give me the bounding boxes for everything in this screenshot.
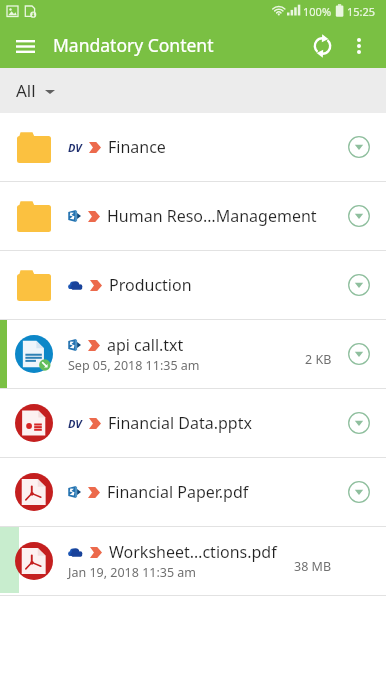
staticText: Financial Data.pptx: [108, 412, 252, 434]
button[interactable]: Show options for Financial Data.pptx: [340, 404, 378, 442]
button[interactable]: Show options for api call.txt: [340, 335, 378, 373]
staticText: 2 KB: [305, 351, 332, 368]
button[interactable]: api call.txt: [0, 320, 386, 388]
staticText: 38 MB: [294, 558, 332, 575]
staticText: Mandatory Content: [53, 33, 214, 57]
staticText: All: [16, 79, 36, 102]
button[interactable]: DV: [0, 389, 386, 457]
staticText: Financial Paper.pdf: [107, 481, 249, 503]
staticText: Finance: [108, 136, 166, 158]
button[interactable]: Financial Paper.pdf: [0, 458, 386, 526]
staticText: api call.txt: [107, 334, 184, 356]
button[interactable]: All: [0, 68, 386, 113]
button[interactable]: Worksheet…ctions.pdf: [0, 527, 386, 595]
button[interactable]: Show options for Finance: [340, 128, 378, 166]
button[interactable]: Show options for Financial Paper.pdf: [340, 473, 378, 511]
staticText: DV: [68, 140, 82, 155]
staticText: Worksheet…ctions.pdf: [109, 541, 277, 563]
staticText: Jan 19, 2018 11:35 am: [68, 564, 197, 581]
button[interactable]: Open navigation drawer: [5, 26, 45, 66]
staticText: DV: [68, 416, 82, 431]
button[interactable]: Show options for Production: [340, 266, 378, 304]
staticText: 15:25: [347, 4, 376, 19]
button[interactable]: Human Reso…Management: [0, 182, 386, 250]
button[interactable]: Production: [0, 251, 386, 319]
button[interactable]: DV: [0, 113, 386, 181]
staticText: Sep 05, 2018 11:35 am: [68, 357, 200, 374]
button[interactable]: Sync: [302, 25, 343, 66]
button[interactable]: Show options for Human Reso…Management: [340, 197, 378, 235]
staticText: Production: [109, 274, 192, 296]
staticText: 100%: [303, 4, 332, 19]
button[interactable]: More options: [341, 28, 377, 64]
staticText: Human Reso…Management: [107, 205, 317, 227]
